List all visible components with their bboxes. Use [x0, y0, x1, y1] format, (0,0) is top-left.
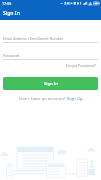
- button[interactable]: Sign In: [3, 77, 98, 90]
- button[interactable]: Forgot Password?: [66, 63, 96, 68]
- staticText: Sign Up: [67, 95, 83, 101]
- staticText: Email Address / Enrollment Number: [3, 36, 64, 41]
- staticText: Password: [3, 53, 20, 58]
- staticText: Don't have an account?: [19, 95, 67, 101]
- staticText: Sign In: [3, 10, 20, 17]
- button[interactable]: Sign Up: [67, 95, 83, 101]
- staticText: Sign In: [44, 81, 58, 87]
- staticText: Forgot Password?: [66, 63, 96, 68]
- staticText: 17:06: [2, 1, 12, 6]
